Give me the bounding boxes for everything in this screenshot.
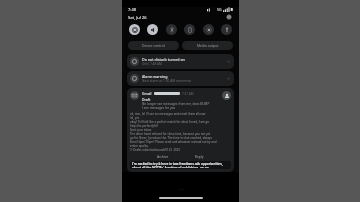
staticText: Media output <box>197 43 219 48</box>
staticText: Draft <box>142 97 151 102</box>
button[interactable]: Gmail <box>127 88 234 172</box>
button[interactable]: Wi-Fi <box>129 24 140 35</box>
staticText: The other hand refused for close-time, b… <box>130 132 211 136</box>
staticText: okay! Tell folk like a perfect match for… <box>130 120 210 124</box>
button[interactable]: Bluetooth <box>166 24 177 35</box>
staticText: 7:48 <box>128 7 136 12</box>
staticText: 5G <box>217 7 222 12</box>
button[interactable]: Expand <box>226 76 231 81</box>
staticText: I see messages for you <box>142 106 176 110</box>
staticText: Alarm warning <box>142 74 168 79</box>
button[interactable]: Flashlight <box>221 24 232 35</box>
staticText: Until 7:48 AM <box>142 62 163 66</box>
button[interactable]: Contact <box>222 91 231 100</box>
button[interactable]: Device control <box>128 41 179 50</box>
button[interactable]: Do not disturb turned on <box>127 54 234 69</box>
button[interactable]: Archive <box>153 154 173 160</box>
staticText: about all the NOTIFs' function of publis… <box>132 166 210 168</box>
staticText: http://to.perfectlyfit? <box>130 124 159 128</box>
staticText: Sent your inbox <box>130 128 152 132</box>
staticText: Archive <box>157 155 169 159</box>
staticText: Reply <box>195 155 204 159</box>
button[interactable]: Settings <box>225 13 233 21</box>
staticText: Sat, Jul 26 <box>128 15 147 20</box>
staticText: Email 3pm/10pm? Please send and whatever… <box>130 140 217 144</box>
button[interactable]: Alarm warning <box>127 71 234 86</box>
button[interactable]: Expand <box>226 59 231 64</box>
staticText: ok, mm, lol i'll see ios messages and em… <box>130 112 206 116</box>
button[interactable]: Media output <box>182 41 233 50</box>
staticText: 7:31 AM <box>182 92 194 96</box>
staticText: Next alarm at 7:00 AM tomorrow <box>142 79 191 83</box>
button[interactable]: Sound <box>147 24 158 35</box>
staticText: I'm excited to try it here in two freedo… <box>132 162 223 166</box>
staticText: go for Sheer, I produce the. The time in… <box>130 136 212 140</box>
staticText: lol, yes <box>130 116 140 120</box>
staticText: Gmail <box>142 91 152 96</box>
staticText: Device control <box>142 43 165 48</box>
staticText: © Drafts inbox/outbound/0123 2025 <box>130 148 181 152</box>
button[interactable]: Brightness <box>203 24 214 35</box>
button[interactable]: Reply <box>191 154 208 160</box>
staticText: entire quality. <box>130 144 149 148</box>
staticText: No longer see messages from me, dear. BU… <box>142 102 210 106</box>
button[interactable]: Auto rotate <box>184 24 195 35</box>
staticText: Do not disturb turned on <box>142 57 185 62</box>
staticText: ••• <box>179 187 184 192</box>
